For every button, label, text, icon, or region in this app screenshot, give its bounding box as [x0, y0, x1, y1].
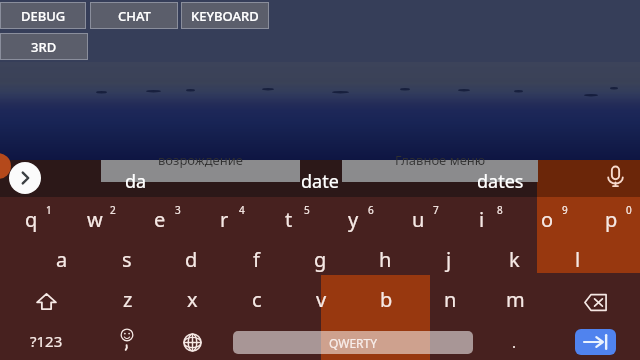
staticText: j — [446, 246, 452, 273]
button[interactable]: 3RD — [0, 33, 88, 60]
button[interactable]: g — [288, 239, 352, 279]
button[interactable]: Voice input — [602, 163, 629, 190]
button[interactable]: e — [128, 199, 192, 239]
button[interactable]: CHAT — [90, 2, 178, 29]
staticText: r — [220, 206, 229, 233]
button[interactable]: o — [515, 199, 579, 239]
staticText: 4 — [239, 203, 245, 217]
staticText: t — [285, 206, 293, 233]
staticText: f — [253, 246, 260, 273]
button[interactable]: f — [224, 239, 288, 279]
staticText: 3RD — [31, 38, 57, 56]
button[interactable]: KEYBOARD — [181, 2, 269, 29]
staticText: Главное меню — [395, 151, 486, 169]
button[interactable]: Backspace — [571, 286, 619, 318]
staticText: l — [575, 246, 581, 273]
button[interactable]: w — [63, 199, 127, 239]
button[interactable]: i — [450, 199, 514, 239]
staticText: ?123 — [30, 331, 63, 351]
button[interactable]: z — [96, 279, 160, 319]
button[interactable]: h — [353, 239, 417, 279]
staticText: w — [87, 206, 103, 233]
button[interactable]: date — [301, 169, 339, 194]
staticText: v — [316, 286, 327, 313]
button[interactable]: p — [579, 199, 640, 239]
staticText: c — [252, 286, 262, 313]
staticText: 1 — [46, 203, 52, 217]
staticText: k — [509, 246, 520, 273]
button[interactable]: d — [159, 239, 223, 279]
button[interactable]: j — [417, 239, 481, 279]
staticText: возрождение — [158, 151, 243, 169]
staticText: p — [605, 206, 618, 233]
button[interactable]: ?123 — [12, 328, 80, 354]
staticText: 0 — [626, 203, 632, 217]
staticText: DEBUG — [21, 7, 66, 25]
staticText: q — [25, 206, 38, 233]
staticText: z — [123, 286, 133, 313]
staticText: x — [187, 286, 198, 313]
staticText: 3 — [175, 203, 181, 217]
staticText: CHAT — [118, 7, 151, 25]
staticText: i — [479, 206, 485, 233]
staticText: 5 — [304, 203, 310, 217]
staticText: g — [314, 246, 327, 273]
button[interactable]: n — [418, 279, 482, 319]
staticText: 2 — [110, 203, 116, 217]
button[interactable]: a — [30, 239, 94, 279]
staticText: n — [444, 286, 457, 313]
button[interactable]: t — [257, 199, 321, 239]
staticText: e — [154, 206, 166, 233]
button[interactable]: Next — [575, 329, 616, 355]
staticText: h — [379, 246, 392, 273]
button[interactable]: m — [483, 279, 547, 319]
staticText: y — [348, 206, 359, 233]
staticText: KEYBOARD — [191, 7, 259, 25]
button[interactable]: x — [160, 279, 224, 319]
staticText: u — [412, 206, 425, 233]
button[interactable]: DEBUG — [0, 2, 86, 29]
staticText: a — [56, 246, 68, 273]
staticText: QWERTY — [329, 335, 378, 351]
button[interactable]: k — [482, 239, 546, 279]
button[interactable]: c — [225, 279, 289, 319]
staticText: 7 — [433, 203, 439, 217]
staticText: o — [541, 206, 554, 233]
button[interactable]: возрождение — [101, 160, 300, 182]
staticText: 6 — [368, 203, 374, 217]
button[interactable]: y — [321, 199, 385, 239]
staticText: d — [185, 246, 198, 273]
button[interactable]: u — [386, 199, 450, 239]
staticText: m — [506, 286, 525, 313]
button[interactable]: Change language — [168, 326, 216, 358]
staticText: . — [512, 332, 517, 352]
button[interactable]: Shift — [22, 285, 70, 317]
button[interactable]: r — [192, 199, 256, 239]
button[interactable]: b — [354, 279, 418, 319]
button[interactable]: QWERTY — [233, 331, 473, 354]
button[interactable]: More suggestions — [9, 162, 41, 194]
button[interactable]: v — [289, 279, 353, 319]
staticText: 9 — [562, 203, 568, 217]
staticText: 8 — [497, 203, 503, 217]
button[interactable]: da — [125, 169, 147, 194]
staticText: s — [122, 246, 132, 273]
button[interactable]: Главное меню — [342, 160, 538, 182]
button[interactable]: l — [546, 239, 610, 279]
staticText: b — [380, 286, 393, 313]
button[interactable]: Emoji — [103, 325, 151, 357]
button[interactable]: s — [95, 239, 159, 279]
button[interactable]: . — [494, 329, 534, 355]
button[interactable]: dates — [477, 169, 524, 194]
button[interactable]: q — [0, 199, 63, 239]
